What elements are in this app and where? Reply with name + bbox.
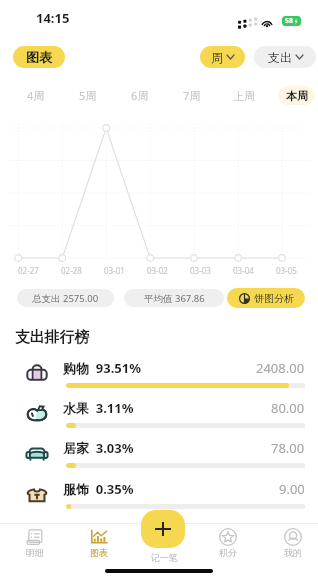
staticText: 本周 — [286, 89, 308, 103]
button[interactable]: 上周 — [225, 86, 262, 105]
staticText: 2408.00 — [256, 359, 305, 377]
staticText: 80.00 — [271, 399, 305, 417]
button[interactable]: 总支出 2575.00 — [17, 289, 114, 307]
staticText: 58 — [285, 16, 294, 26]
button[interactable]: 饼图分析 — [227, 288, 305, 308]
button[interactable]: 明细 — [6, 524, 64, 572]
button[interactable]: 水果 3.11% — [0, 394, 318, 432]
button[interactable]: Add record — [141, 510, 185, 548]
staticText: 上周 — [233, 89, 255, 103]
staticText: 积分 — [219, 547, 237, 558]
staticText: 购物 93.51% — [63, 359, 141, 377]
button[interactable]: 4周 — [17, 86, 54, 105]
staticText: 饼图分析 — [254, 292, 294, 305]
button[interactable]: 6周 — [121, 86, 158, 105]
staticText: 02-27 — [18, 265, 39, 276]
staticText: 图表 — [26, 49, 52, 65]
staticText: 图表 — [90, 547, 108, 558]
button[interactable]: 图表 — [70, 524, 128, 572]
staticText: 03-05 — [276, 265, 297, 276]
staticText: 明细 — [26, 547, 44, 558]
staticText: 居家 3.03% — [63, 439, 134, 457]
staticText: 02-28 — [61, 265, 82, 276]
staticText: 总支出 2575.00 — [32, 292, 99, 305]
staticText: 记一笔 — [151, 552, 178, 563]
button[interactable]: 图表 — [13, 46, 65, 68]
button[interactable]: 居家 3.03% — [0, 434, 318, 472]
staticText: 5周 — [79, 88, 97, 103]
button[interactable]: 本周 — [278, 86, 315, 105]
staticText: 78.00 — [271, 439, 305, 457]
staticText: 03-03 — [190, 265, 211, 276]
button[interactable]: 支出 — [254, 46, 316, 68]
staticText: 我的 — [284, 547, 302, 558]
staticText: 水果 3.11% — [63, 399, 134, 417]
button[interactable]: 7周 — [173, 86, 210, 105]
staticText: 14:15 — [36, 9, 70, 27]
button[interactable]: 平均值 367.86 — [124, 289, 224, 307]
staticText: 支出排行榜 — [15, 328, 89, 347]
button[interactable]: 5周 — [69, 86, 106, 105]
staticText: 03-02 — [147, 265, 168, 276]
button[interactable]: 服饰 0.35% — [0, 475, 318, 513]
button[interactable]: 积分 — [199, 524, 257, 572]
staticText: 03-04 — [233, 265, 254, 276]
staticText: 服饰 0.35% — [63, 480, 134, 498]
staticText: 平均值 367.86 — [144, 292, 205, 305]
staticText: 支出 — [268, 50, 292, 65]
staticText: 9.00 — [279, 480, 305, 498]
button[interactable]: 我的 — [264, 524, 318, 572]
button[interactable]: 周 — [200, 46, 245, 68]
staticText: 4周 — [27, 88, 45, 103]
staticText: 周 — [211, 50, 223, 65]
button[interactable]: 记一笔 — [135, 524, 193, 572]
staticText: 6周 — [131, 88, 149, 103]
button[interactable]: 购物 93.51% — [0, 354, 318, 392]
staticText: 7周 — [183, 88, 201, 103]
staticText: 03-01 — [104, 265, 125, 276]
